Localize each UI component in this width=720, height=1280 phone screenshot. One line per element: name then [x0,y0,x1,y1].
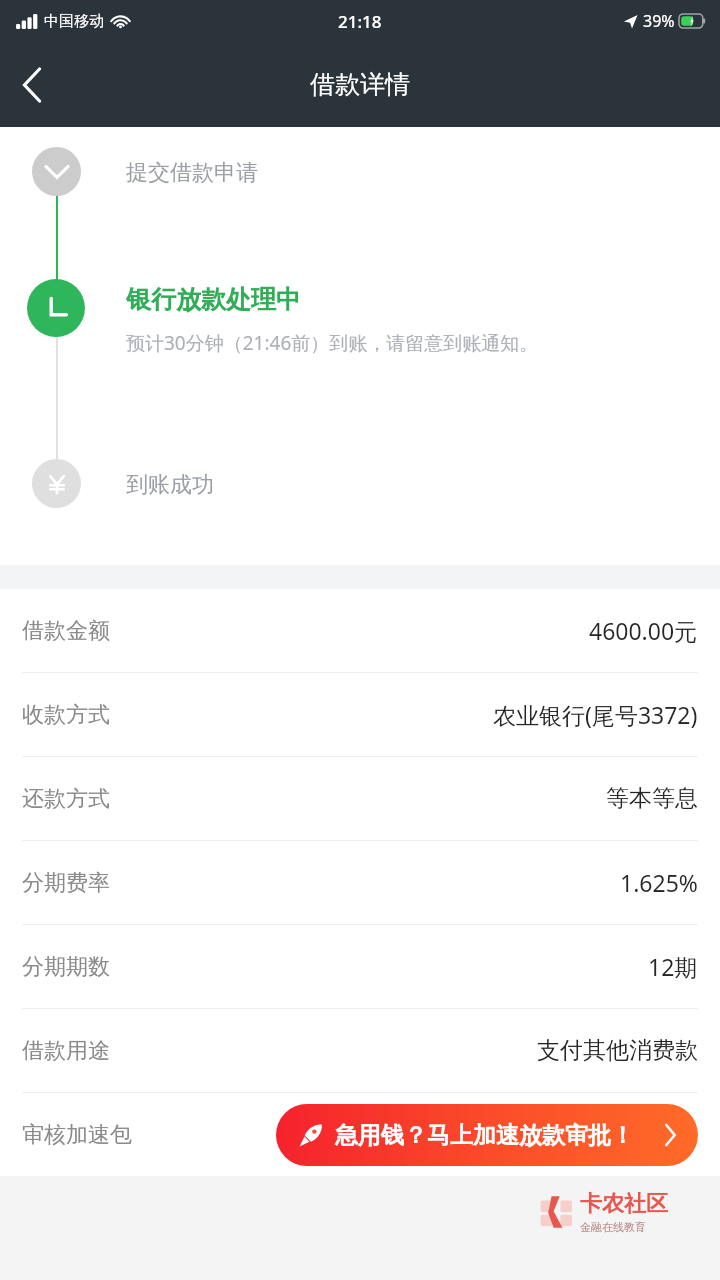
button[interactable]: 收款方式 [0,673,720,756]
staticText: 12期 [648,951,698,982]
button[interactable]: 借款金额 [0,589,720,672]
staticText: 急用钱？马上加速放款审批！ [335,1121,634,1150]
staticText: 预计30分钟（21:46前）到账，请留意到账通知。 [126,330,539,356]
button[interactable]: 急用钱？马上加速放款审批！ [276,1104,698,1166]
staticText: 卡农社区 [580,1190,668,1218]
staticText: 39% [643,10,675,32]
staticText: 支付其他消费款 [537,1036,698,1065]
staticText: 1.625% [620,867,698,898]
staticText: 中国移动 [44,12,104,31]
button[interactable]: 借款用途 [0,1009,720,1092]
staticText: 借款用途 [22,1037,110,1065]
staticText: 还款方式 [22,785,110,813]
staticText: 4600.00元 [589,615,698,646]
button[interactable]: 返回 [0,53,64,117]
staticText: 分期费率 [22,869,110,897]
button[interactable]: 分期费率 [0,841,720,924]
staticText: 到账成功 [126,471,214,499]
staticText: 审核加速包 [22,1121,132,1149]
staticText: 金融在线教育 [580,1220,646,1234]
staticText: 借款金额 [22,617,110,645]
staticText: 分期期数 [22,953,110,981]
staticText: 收款方式 [22,701,110,729]
staticText: 提交借款申请 [126,159,258,187]
button[interactable]: 还款方式 [0,757,720,840]
staticText: 21:18 [338,10,382,33]
staticText: 农业银行(尾号3372) [493,699,698,730]
staticText: 等本等息 [606,784,698,813]
staticText: 银行放款处理中 [126,284,301,315]
staticText: 借款详情 [310,69,410,100]
button[interactable]: 分期期数 [0,925,720,1008]
